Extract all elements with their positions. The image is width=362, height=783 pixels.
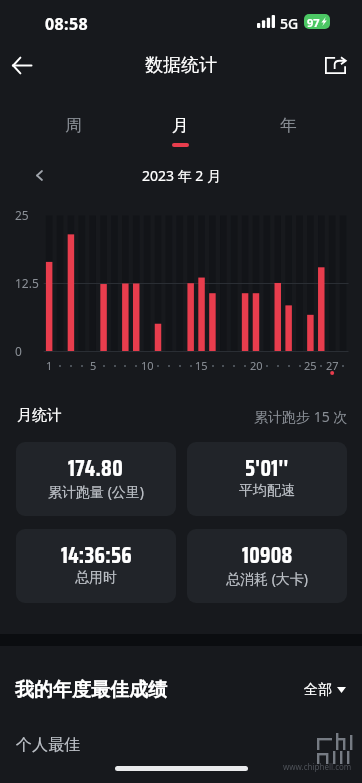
staticText: 5	[90, 358, 97, 373]
button[interactable]: 5'01''	[187, 442, 347, 516]
button[interactable]: 10908	[187, 529, 347, 603]
staticText: 27	[326, 358, 339, 373]
staticText: 10908	[242, 538, 293, 573]
staticText: 20	[250, 358, 263, 373]
staticText: www.chiphell.com	[283, 761, 352, 772]
staticText: 平均配速	[239, 482, 295, 500]
button[interactable]: Back	[0, 43, 44, 87]
staticText: 08:58	[45, 13, 89, 35]
staticText: 累计跑步 15 次	[254, 407, 348, 426]
button[interactable]: Share	[313, 43, 357, 87]
staticText: 25	[304, 358, 317, 373]
staticText: 个人最佳	[16, 735, 80, 755]
staticText: 174.80	[68, 451, 124, 486]
staticText: 14:36:56	[61, 538, 132, 573]
staticText: 10	[141, 358, 154, 373]
staticText: 15	[195, 358, 208, 373]
button[interactable]: Previous month	[24, 160, 54, 190]
staticText: 全部	[304, 681, 332, 699]
button[interactable]: 174.80	[16, 442, 176, 516]
staticText: 年	[280, 115, 297, 136]
staticText: 97	[307, 15, 320, 29]
staticText: 25	[15, 207, 29, 223]
staticText: 12.5	[15, 275, 39, 291]
staticText: 数据统计	[145, 54, 217, 77]
staticText: 月	[172, 115, 189, 136]
staticText: 2023 年 2 月	[142, 166, 221, 185]
staticText: 总消耗 (大卡)	[226, 569, 309, 588]
staticText: 1	[46, 358, 53, 373]
button[interactable]: 全部	[304, 680, 346, 700]
staticText: 我的年度最佳成绩	[15, 678, 167, 702]
staticText: 5'01''	[245, 451, 289, 486]
button[interactable]: 月	[127, 103, 234, 150]
staticText: 累计跑量 (公里)	[48, 482, 145, 501]
staticText: 5G	[280, 14, 299, 33]
staticText: 0	[15, 343, 22, 359]
button[interactable]: 14:36:56	[16, 529, 176, 603]
staticText: 月统计	[17, 406, 62, 425]
staticText: 总用时	[75, 569, 117, 587]
button[interactable]: 年	[235, 103, 342, 150]
button[interactable]: 周	[20, 103, 127, 150]
staticText: 周	[65, 115, 82, 136]
